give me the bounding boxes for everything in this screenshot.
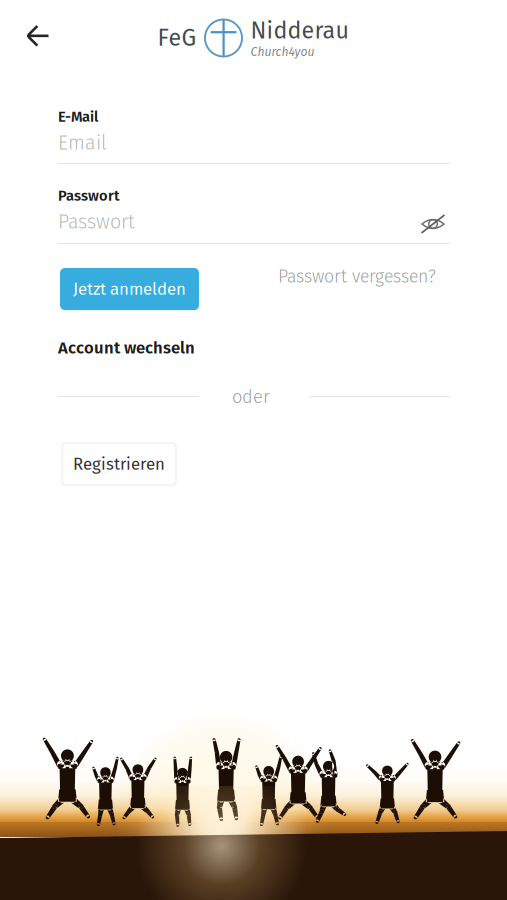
staticText: Passwort <box>58 210 135 234</box>
staticText: Church4you <box>250 45 314 59</box>
staticText: oder <box>232 386 270 408</box>
staticText: Passwort vergessen? <box>278 266 436 287</box>
staticText: Registrieren <box>73 454 165 474</box>
button[interactable]: Back <box>16 14 60 58</box>
staticText: Jetzt anmelden <box>73 279 186 299</box>
staticText: FeG <box>157 24 196 52</box>
staticText: Passwort <box>58 187 120 205</box>
button[interactable]: Passwort vergessen? <box>278 266 436 287</box>
staticText: Account wechseln <box>58 338 195 358</box>
staticText: Nidderau <box>250 17 349 45</box>
staticText: E-Mail <box>58 108 98 126</box>
button[interactable]: Registrieren <box>62 443 176 485</box>
staticText: Email <box>58 131 107 155</box>
button[interactable]: Jetzt anmelden <box>60 268 199 310</box>
button[interactable]: Show password <box>416 209 450 239</box>
button[interactable]: Account wechseln <box>58 338 195 358</box>
